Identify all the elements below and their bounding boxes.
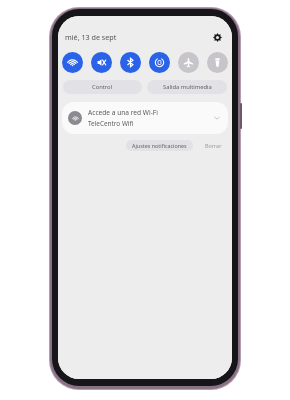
staticText: Borrar bbox=[205, 142, 222, 149]
button[interactable]: Bluetooth bbox=[120, 52, 141, 73]
button[interactable]: Salida multimedia bbox=[147, 80, 227, 94]
button[interactable]: Modo avión bbox=[178, 52, 199, 73]
staticText: Salida multimedia bbox=[163, 83, 212, 91]
button[interactable]: Ajustes notificaciones bbox=[126, 140, 193, 151]
staticText: mié, 13 de sept bbox=[65, 32, 117, 42]
button[interactable]: Accede a una red Wi-Fi bbox=[62, 102, 228, 134]
other: Expandir bbox=[212, 113, 222, 123]
staticText: Control bbox=[92, 83, 113, 91]
staticText: Accede a una red Wi-Fi bbox=[88, 108, 158, 117]
button[interactable]: Borrar bbox=[201, 140, 226, 151]
button[interactable]: Silenciar bbox=[91, 52, 112, 73]
staticText: TeleCentro Wifi bbox=[88, 119, 134, 128]
staticText: Ajustes notificaciones bbox=[132, 142, 187, 149]
button[interactable]: Girar pantalla bbox=[149, 52, 170, 73]
button[interactable]: Control bbox=[63, 80, 142, 94]
button[interactable]: Linterna bbox=[207, 52, 228, 73]
button[interactable]: Wi-Fi bbox=[62, 52, 83, 73]
button[interactable]: Settings bbox=[209, 29, 225, 45]
